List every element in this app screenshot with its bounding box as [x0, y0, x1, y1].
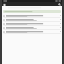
button[interactable]: Navigation menu	[3, 3, 6, 6]
button[interactable]	[2, 14, 62, 18]
button[interactable]	[2, 26, 62, 30]
button[interactable]	[2, 22, 62, 26]
button[interactable]	[2, 18, 62, 22]
button[interactable]: Search	[58, 3, 61, 6]
button[interactable]	[2, 30, 62, 34]
button[interactable]	[3, 10, 61, 13]
